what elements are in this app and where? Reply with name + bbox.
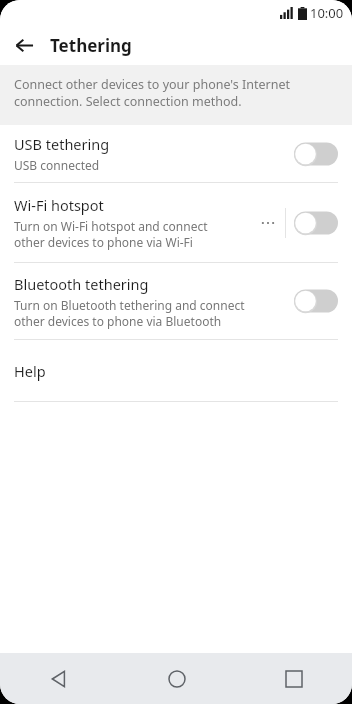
button[interactable]: Bluetooth tethering	[0, 263, 352, 339]
staticText: USB tethering	[14, 134, 110, 154]
staticText: Wi-Fi hotspot	[14, 195, 104, 215]
staticText: Bluetooth tethering	[14, 274, 149, 294]
button[interactable]: Toggle	[294, 141, 338, 167]
button[interactable]: Wi-Fi hotspot	[0, 183, 352, 262]
button[interactable]: USB tethering	[0, 125, 352, 182]
staticText: connection. Select connection method.	[14, 93, 242, 110]
button[interactable]: Toggle	[294, 288, 338, 314]
staticText: Tethering	[50, 34, 132, 57]
button[interactable]: Back	[8, 29, 40, 61]
staticText: other devices to phone via Wi-Fi	[14, 234, 193, 250]
staticText: other devices to phone via Bluetooth	[14, 313, 222, 329]
staticText: USB connected	[14, 157, 100, 173]
staticText: Turn on Bluetooth tethering and connect	[14, 297, 245, 313]
staticText: 10:00	[310, 4, 344, 22]
button[interactable]: Recent apps	[235, 653, 352, 704]
button[interactable]: Back	[0, 653, 118, 704]
staticText: Help	[14, 361, 46, 381]
staticText: Connect other devices to your phone's In…	[14, 76, 291, 93]
button[interactable]: Toggle	[294, 210, 338, 236]
staticText: Turn on Wi-Fi hotspot and connect	[14, 218, 208, 234]
button[interactable]: Home	[118, 653, 235, 704]
button[interactable]: More options	[255, 210, 281, 236]
button[interactable]: Help	[0, 340, 352, 401]
